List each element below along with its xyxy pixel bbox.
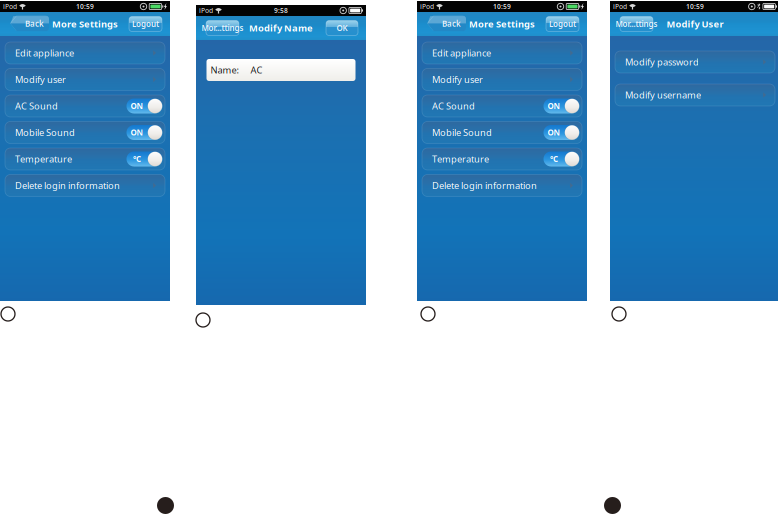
staticText: Delete login information	[432, 179, 537, 192]
button[interactable]: AC Sound	[5, 95, 165, 117]
button[interactable]: Delete login information	[422, 174, 582, 196]
button[interactable]: Logout	[546, 16, 579, 31]
staticText: Modify username	[625, 89, 701, 101]
staticText: Edit appliance	[432, 47, 491, 59]
button[interactable]: AC Sound	[422, 95, 582, 117]
staticText: Logout	[132, 19, 159, 29]
staticText: iPod	[3, 2, 17, 11]
staticText: More Settings	[52, 18, 118, 30]
button[interactable]: Back	[427, 16, 466, 31]
staticText: Edit appliance	[15, 47, 74, 59]
staticText: Logout	[549, 19, 576, 29]
button[interactable]: Edit appliance	[5, 42, 165, 64]
staticText: Modify User	[666, 18, 723, 30]
button[interactable]: Logout	[129, 16, 162, 31]
staticText: Name:	[210, 64, 239, 76]
staticText: Back	[25, 18, 44, 29]
button[interactable]: Temperature	[5, 148, 165, 170]
staticText: 10:59	[686, 2, 704, 11]
staticText: 10:59	[76, 2, 94, 11]
button[interactable]: Mobile Sound	[5, 121, 165, 143]
button[interactable]: Mobile Sound	[422, 121, 582, 143]
staticText: Delete login information	[15, 179, 120, 192]
staticText: More Settings	[469, 18, 535, 30]
button[interactable]: Delete login information	[5, 174, 165, 196]
button[interactable]: Mor...ttings	[206, 20, 239, 35]
button[interactable]: Mor...ttings	[620, 16, 653, 31]
staticText: AC	[250, 64, 262, 76]
staticText: OK	[336, 23, 347, 33]
staticText: ON	[547, 127, 560, 138]
staticText: ON	[547, 101, 560, 111]
staticText: Modify Name	[249, 22, 313, 34]
button[interactable]: Temperature	[422, 148, 582, 170]
staticText: °C	[550, 154, 558, 164]
staticText: iPod	[613, 2, 627, 11]
staticText: °C	[133, 154, 141, 164]
button[interactable]: Modify user	[5, 68, 165, 90]
staticText: Modify user	[432, 73, 483, 86]
staticText: Modify user	[15, 73, 66, 86]
button[interactable]: Edit appliance	[422, 42, 582, 64]
staticText: iPod	[420, 2, 434, 11]
button[interactable]: Modify username	[615, 84, 775, 106]
staticText: Temperature	[15, 153, 72, 165]
staticText: Mobile Sound	[432, 126, 492, 139]
staticText: iPod	[199, 6, 213, 15]
staticText: 9:58	[274, 6, 288, 15]
staticText: AC Sound	[432, 100, 475, 112]
staticText: ON	[130, 127, 143, 138]
staticText: AC Sound	[15, 100, 58, 112]
staticText: Mor...ttings	[615, 19, 657, 29]
staticText: Temperature	[432, 153, 489, 165]
staticText: ON	[130, 101, 143, 111]
staticText: Back	[442, 18, 461, 29]
button[interactable]: OK	[326, 20, 358, 35]
staticText: 10:59	[493, 2, 511, 11]
button[interactable]: Back	[10, 16, 49, 31]
staticText: Modify password	[625, 56, 699, 68]
staticText: Mobile Sound	[15, 126, 75, 139]
button[interactable]: Modify user	[422, 68, 582, 90]
staticText: Mor...ttings	[201, 23, 243, 33]
button[interactable]: Modify password	[615, 51, 775, 73]
